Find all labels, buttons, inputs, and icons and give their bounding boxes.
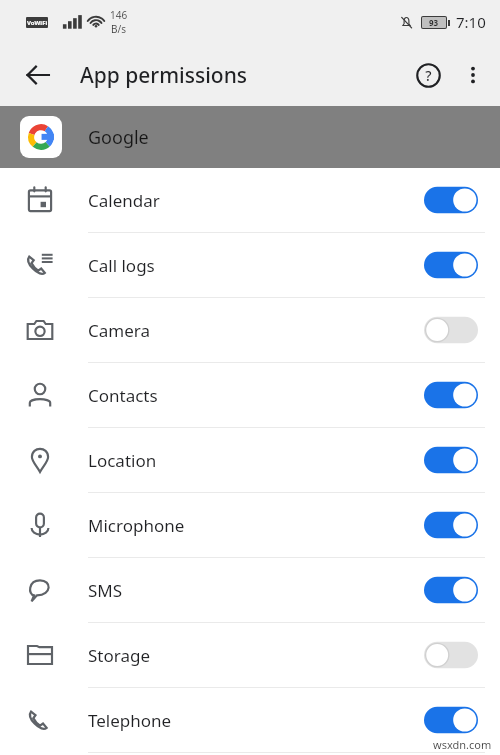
- staticText: 7:10: [456, 12, 486, 32]
- button[interactable]: Google: [0, 106, 500, 168]
- button[interactable]: Contacts: [0, 363, 500, 427]
- button[interactable]: Microphone permission toggle: [424, 510, 478, 540]
- staticText: Calendar: [88, 189, 424, 212]
- staticText: Contacts: [88, 384, 424, 407]
- staticText: VoWiFi: [27, 19, 48, 27]
- button[interactable]: Calendar permission toggle: [424, 185, 478, 215]
- staticText: 146: [110, 8, 128, 22]
- button[interactable]: Storage: [0, 623, 500, 687]
- staticText: App permissions: [80, 61, 248, 90]
- staticText: Camera: [88, 319, 424, 342]
- staticText: ?: [425, 66, 432, 85]
- button[interactable]: Call logs permission toggle: [424, 250, 478, 280]
- staticText: Google: [88, 125, 149, 150]
- button[interactable]: Microphone: [0, 493, 500, 557]
- staticText: Location: [88, 449, 424, 472]
- button[interactable]: Location permission toggle: [424, 445, 478, 475]
- staticText: wsxdn.com: [433, 737, 492, 752]
- staticText: SMS: [88, 579, 424, 602]
- staticText: Telephone: [88, 709, 424, 732]
- button[interactable]: More options: [452, 51, 494, 99]
- staticText: Microphone: [88, 514, 424, 537]
- button[interactable]: Location: [0, 428, 500, 492]
- button[interactable]: Call logs: [0, 233, 500, 297]
- button[interactable]: SMS permission toggle: [424, 575, 478, 605]
- staticText: Storage: [88, 644, 424, 667]
- button[interactable]: Camera permission toggle: [424, 315, 478, 345]
- button[interactable]: Calendar: [0, 168, 500, 232]
- staticText: Call logs: [88, 254, 424, 277]
- button[interactable]: SMS: [0, 558, 500, 622]
- button[interactable]: Help: [404, 51, 452, 99]
- button[interactable]: Storage permission toggle: [424, 640, 478, 670]
- button[interactable]: Contacts permission toggle: [424, 380, 478, 410]
- button[interactable]: Back: [14, 51, 62, 99]
- button[interactable]: Camera: [0, 298, 500, 362]
- button[interactable]: Telephone: [0, 688, 500, 752]
- staticText: 93: [429, 17, 439, 28]
- button[interactable]: Telephone permission toggle: [424, 705, 478, 735]
- staticText: B/s: [111, 22, 127, 36]
